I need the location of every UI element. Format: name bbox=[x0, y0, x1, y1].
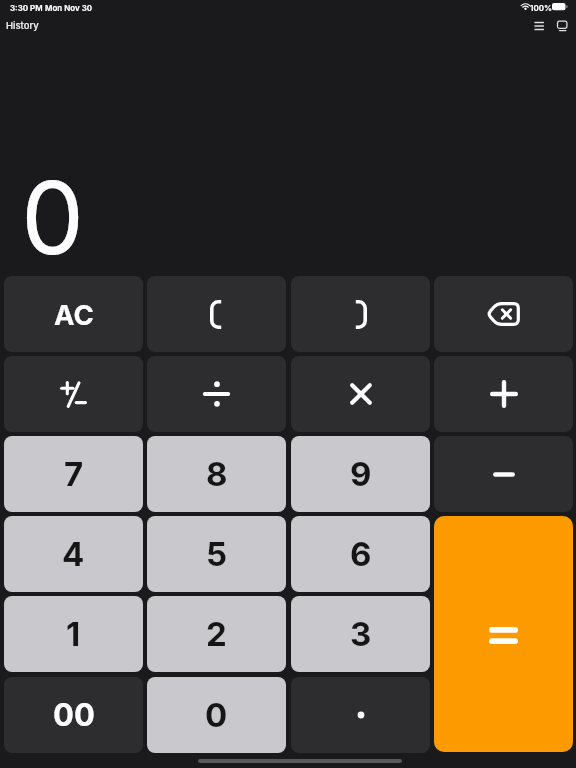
button[interactable] bbox=[434, 276, 573, 352]
button[interactable]: 7 bbox=[4, 436, 143, 512]
staticText: 3 bbox=[350, 614, 372, 654]
button[interactable] bbox=[434, 516, 573, 752]
button[interactable]: 4 bbox=[4, 516, 143, 592]
button[interactable]: 8 bbox=[147, 436, 286, 512]
button[interactable]: 5 bbox=[147, 516, 286, 592]
staticText: 3:30 PM bbox=[10, 3, 43, 13]
staticText: Mon Nov 30 bbox=[45, 3, 93, 13]
button[interactable]: 2 bbox=[147, 596, 286, 672]
button[interactable] bbox=[291, 677, 430, 753]
staticText: 1 bbox=[66, 614, 81, 654]
button[interactable] bbox=[434, 436, 573, 512]
button[interactable]: 6 bbox=[291, 516, 430, 592]
button[interactable]: AC bbox=[4, 276, 143, 352]
staticText: 6 bbox=[350, 534, 372, 574]
button[interactable] bbox=[147, 356, 286, 432]
staticText: 0 bbox=[21, 157, 85, 278]
staticText: 00 bbox=[53, 696, 95, 734]
button[interactable] bbox=[434, 356, 573, 432]
button[interactable]: 00 bbox=[4, 677, 143, 753]
staticText: AC bbox=[54, 298, 94, 331]
button[interactable] bbox=[291, 356, 430, 432]
staticText: 8 bbox=[206, 454, 228, 494]
staticText: 0 bbox=[205, 695, 228, 735]
staticText: 100% bbox=[530, 3, 552, 13]
button[interactable] bbox=[555, 18, 570, 33]
button[interactable]: History bbox=[4, 19, 37, 30]
staticText: History bbox=[6, 20, 39, 31]
button[interactable] bbox=[4, 356, 143, 432]
button[interactable]: 3 bbox=[291, 596, 430, 672]
staticText: 5 bbox=[206, 534, 228, 574]
button[interactable] bbox=[147, 276, 286, 352]
button[interactable] bbox=[531, 18, 547, 33]
staticText: 7 bbox=[64, 454, 84, 494]
button[interactable] bbox=[291, 276, 430, 352]
staticText: 9 bbox=[350, 454, 372, 494]
button[interactable]: 0 bbox=[147, 677, 286, 753]
button[interactable]: 9 bbox=[291, 436, 430, 512]
staticText: 4 bbox=[62, 534, 85, 574]
button[interactable]: 1 bbox=[4, 596, 143, 672]
staticText: 2 bbox=[206, 614, 227, 654]
